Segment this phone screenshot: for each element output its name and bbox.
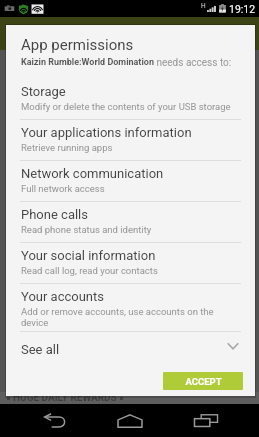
staticText: Read phone status and identity [21,224,152,235]
staticText: HUGE DAILY REWARDS [13,392,117,404]
button[interactable]: See all [6,332,255,366]
button[interactable]: Your social information [6,243,255,284]
button[interactable]: Network communication [6,161,255,202]
staticText: Modify or delete the contents of your US… [21,101,231,112]
staticText: Add or remove accounts, use accounts on … [21,306,235,328]
button[interactable]: Storage [6,79,255,120]
staticText: 19:12 [229,3,256,15]
staticText: ACCEPT [185,376,222,387]
staticText: Kaizin Rumble:World Domination [21,57,154,68]
button[interactable]: Recent apps [180,404,232,437]
staticText: H [201,2,206,10]
staticText: App permissions [21,36,134,54]
button[interactable]: Your applications information [6,120,255,161]
button[interactable]: ACCEPT [163,372,243,390]
staticText: Your accounts [21,289,105,304]
staticText: Your applications information [21,125,192,140]
button[interactable]: Your accounts [6,284,255,332]
staticText: Full network access [21,183,105,194]
button[interactable]: Home [104,404,156,437]
staticText: Phone calls [21,207,88,222]
staticText: See all [21,342,60,357]
staticText: Retrieve running apps [21,142,113,153]
staticText: Your social information [21,248,156,263]
staticText: Read call log, read your contacts [21,265,158,276]
staticText: Storage [21,84,66,99]
button[interactable]: Back [28,404,80,437]
staticText: needs access to: [154,57,232,69]
staticText: Network communication [21,166,164,181]
button[interactable]: Phone calls [6,202,255,243]
